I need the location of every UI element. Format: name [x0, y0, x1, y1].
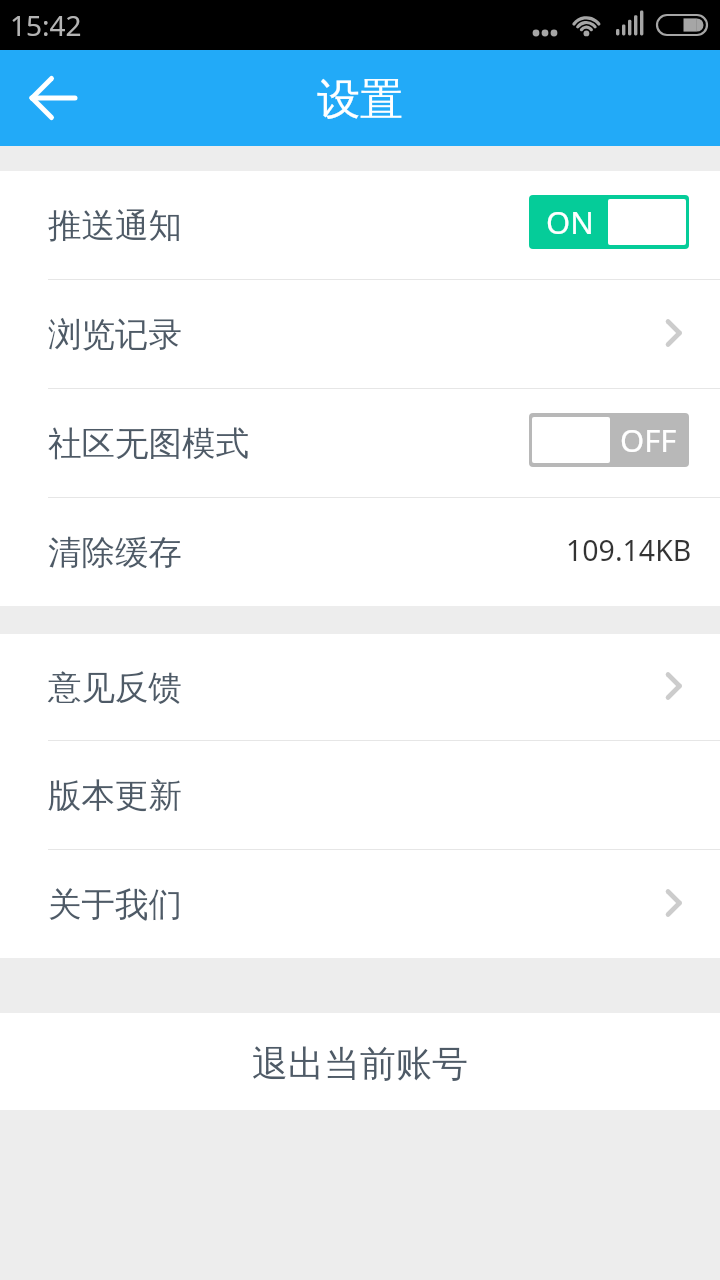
button[interactable]: No image mode off	[529, 413, 689, 467]
staticText: 社区无图模式	[48, 423, 249, 465]
staticText: 版本更新	[48, 775, 182, 817]
button[interactable]: 社区无图模式	[0, 389, 720, 497]
staticText: 设置	[317, 73, 403, 127]
button[interactable]: 版本更新	[0, 741, 720, 849]
staticText: ON	[546, 201, 594, 243]
staticText: 15:42	[10, 6, 82, 44]
button[interactable]: 推送通知	[0, 171, 720, 279]
button[interactable]: 浏览记录	[0, 280, 720, 388]
staticText: 退出当前账号	[252, 1041, 468, 1086]
staticText: 意见反馈	[48, 667, 182, 709]
button[interactable]: 退出当前账号	[0, 1013, 720, 1110]
staticText: OFF	[620, 419, 677, 461]
staticText: 关于我们	[48, 884, 182, 926]
button[interactable]: Push notifications on	[529, 195, 689, 249]
button[interactable]: Back	[0, 50, 96, 146]
staticText: 浏览记录	[48, 314, 182, 356]
button[interactable]: 清除缓存	[0, 498, 720, 606]
button[interactable]: 关于我们	[0, 850, 720, 958]
button[interactable]: 意见反馈	[0, 634, 720, 740]
staticText: 清除缓存	[48, 532, 182, 574]
staticText: 109.14KB	[566, 531, 692, 570]
staticText: 推送通知	[48, 205, 182, 247]
